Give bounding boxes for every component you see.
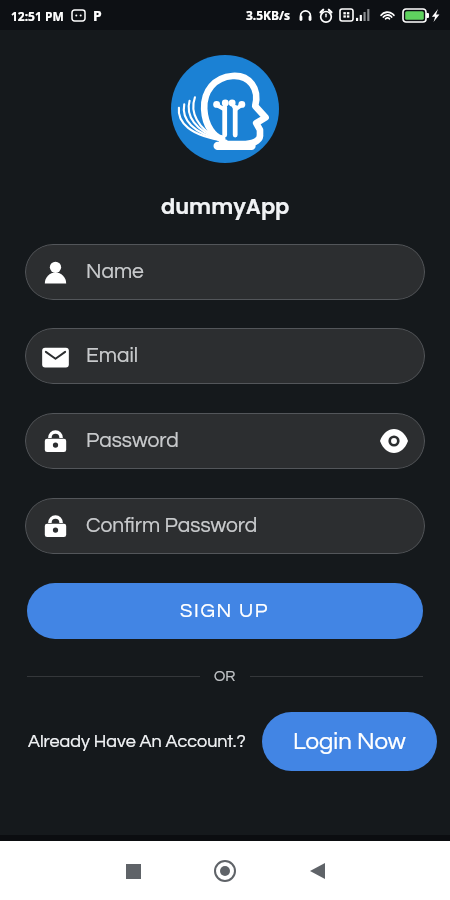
button[interactable]: Already Have An Account.? [28, 732, 246, 751]
staticText: OR [214, 669, 236, 684]
button[interactable]: Name [25, 244, 425, 300]
staticText: Email [86, 345, 139, 367]
button[interactable]: Home [203, 849, 247, 893]
button[interactable]: Recents [111, 849, 155, 893]
button[interactable]: Email [25, 328, 425, 384]
staticText: Confirm Password [86, 515, 258, 537]
button[interactable]: Confirm Password [25, 498, 425, 554]
staticText: Name [86, 261, 144, 283]
staticText: Login Now [293, 729, 406, 754]
button[interactable]: Back [295, 849, 339, 893]
button[interactable]: SIGN UP [27, 583, 423, 639]
staticText: dummyApp [161, 192, 290, 221]
staticText: Password [86, 430, 179, 452]
button[interactable]: Password [25, 413, 425, 469]
staticText: SIGN UP [180, 601, 270, 622]
staticText: 12:51 PM [11, 8, 64, 24]
button[interactable]: Show password [379, 427, 409, 455]
staticText: 3.5KB/s [246, 7, 291, 23]
button[interactable]: Login Now [262, 712, 437, 771]
staticText: P [93, 6, 102, 25]
